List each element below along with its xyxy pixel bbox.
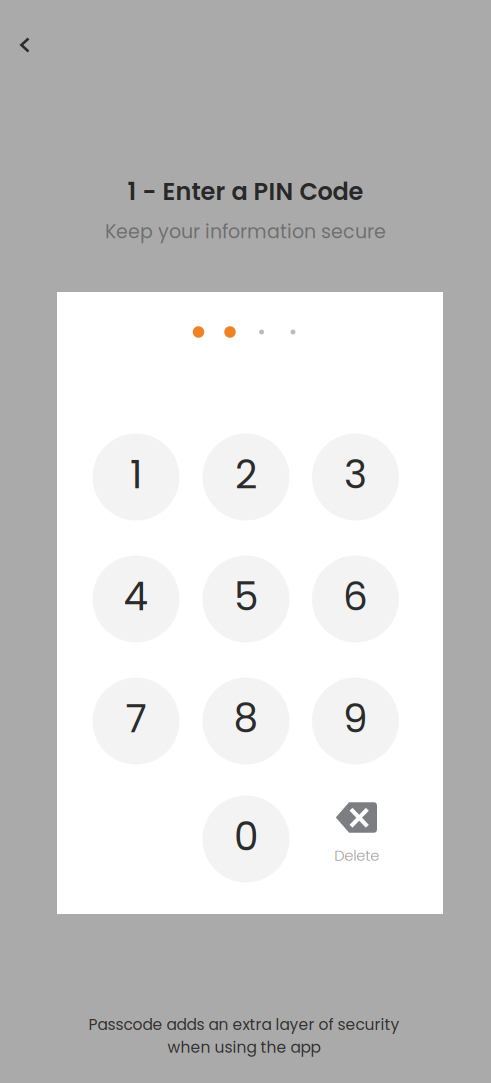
button[interactable]: 5 [202,555,289,642]
button[interactable]: 4 [92,555,179,642]
button[interactable]: 9 [312,677,399,764]
staticText: 9 [343,691,368,746]
button[interactable]: 0 [202,795,289,882]
button[interactable]: 2 [202,433,289,520]
staticText: Keep your information secure [105,218,386,245]
staticText: 3 [344,447,367,502]
staticText: 2 [235,447,257,502]
staticText: 1 [130,447,142,502]
staticText: 5 [234,569,258,624]
staticText: Passcode adds an extra layer of security [88,1014,399,1035]
button[interactable]: 3 [312,433,399,520]
staticText: 1 - Enter a PIN Code [127,175,363,208]
staticText: 0 [234,809,258,864]
staticText: Delete [334,845,379,866]
button[interactable]: Back [3,23,47,67]
staticText: 6 [343,569,368,624]
button[interactable]: 8 [202,677,289,764]
staticText: when using the app [167,1036,320,1058]
button[interactable]: 6 [312,555,399,642]
button[interactable]: 1 [92,433,179,520]
button[interactable]: Delete [313,790,400,877]
staticText: 4 [123,569,148,624]
staticText: 8 [233,691,258,746]
staticText: 7 [125,691,146,746]
button[interactable]: 7 [92,677,179,764]
